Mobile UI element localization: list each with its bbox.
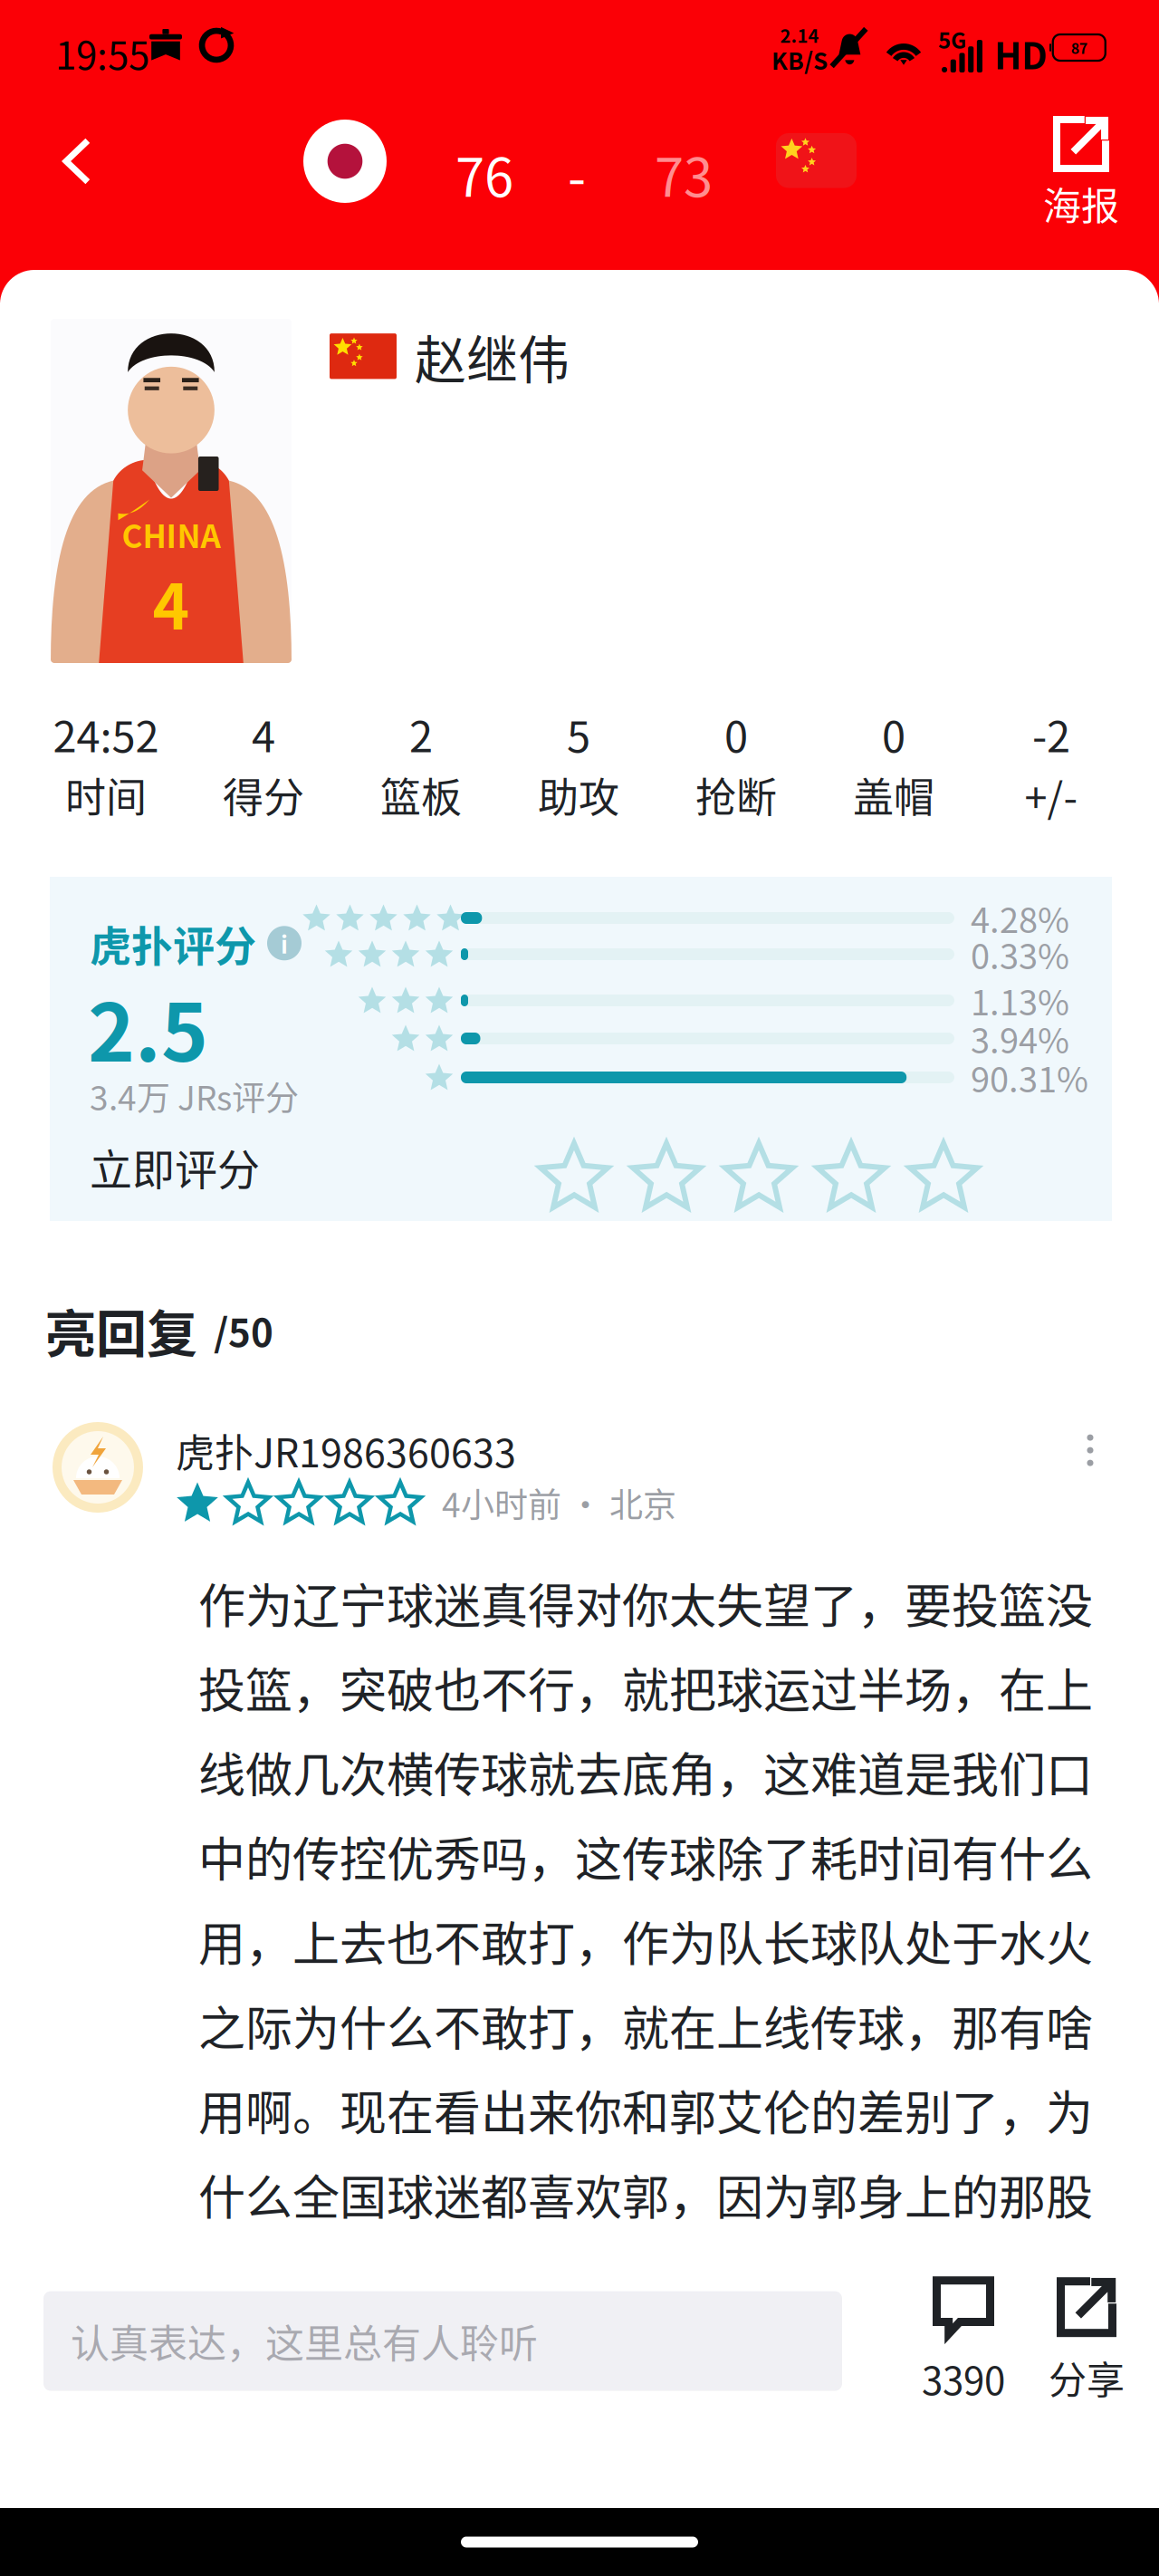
staticText: 4 [252,703,275,765]
staticText: 分享 [1049,2350,1125,2405]
staticText: /50 [214,1303,273,1358]
staticText: 篮板 [380,765,462,825]
staticText: 亮回复 [45,1293,197,1367]
staticText: 24:52 [53,703,159,765]
staticText: 虎扑评分 [90,913,256,973]
staticText: +/- [1025,765,1078,825]
staticText: 盖帽 [853,765,934,825]
staticText: HD [994,27,1048,80]
staticText: 0.33% [971,929,1069,979]
staticText: 得分 [223,765,304,825]
button[interactable]: 认真表达，这里总有人聆听 [43,2291,842,2391]
staticText: 2.14 [780,22,819,48]
staticText: 抢断 [695,765,777,825]
staticText: - [568,136,586,212]
staticText: -2 [1032,703,1070,765]
staticText: KB/S [771,43,828,77]
staticText: CHINA [122,511,220,557]
staticText: 海报 [1043,176,1119,231]
button[interactable]: 评分 [539,1141,979,1212]
staticText: 作为辽宁球迷真得对你太失望了，要投篮没投篮，突破也不行，就把球运过半场，在上线做… [198,1569,1093,2228]
staticText: 2 [409,703,433,765]
staticText: 立即评分 [90,1136,260,1198]
staticText: 4 [153,557,190,648]
button[interactable]: 更多 [1065,1425,1116,1476]
staticText: 助攻 [538,765,619,825]
staticText: 19:55 [55,25,149,80]
staticText: 认真表达，这里总有人聆听 [71,2313,538,2369]
button[interactable]: 返回 [34,118,121,205]
button[interactable]: 立即评分 [50,1130,260,1203]
staticText: 90.31% [971,1053,1088,1102]
staticText: 3.4万 JRs评分 [90,1072,299,1120]
staticText: 3390 [922,2351,1005,2406]
staticText: 5 [567,703,590,765]
button[interactable]: 分享 [1025,2277,1148,2405]
staticText: 87 [1071,37,1087,58]
staticText: 5G [938,24,966,55]
button[interactable]: 评论 3390 [902,2276,1025,2406]
staticText: i [281,926,288,960]
staticText: 赵继伟 [415,319,570,394]
staticText: 4.28% [971,893,1069,943]
staticText: 0 [724,703,748,765]
staticText: 76 [455,136,513,212]
staticText: 4小时前 · 北京 [442,1478,676,1527]
staticText: 1.13% [971,976,1069,1025]
staticText: 2.5 [88,969,208,1085]
button[interactable]: 海报 [1043,116,1119,231]
staticText: 73 [655,136,713,212]
staticText: 3.94% [971,1014,1069,1063]
staticText: 时间 [65,765,147,825]
staticText: 0 [882,703,905,765]
staticText: 虎扑JR1986360633 [176,1422,516,1478]
